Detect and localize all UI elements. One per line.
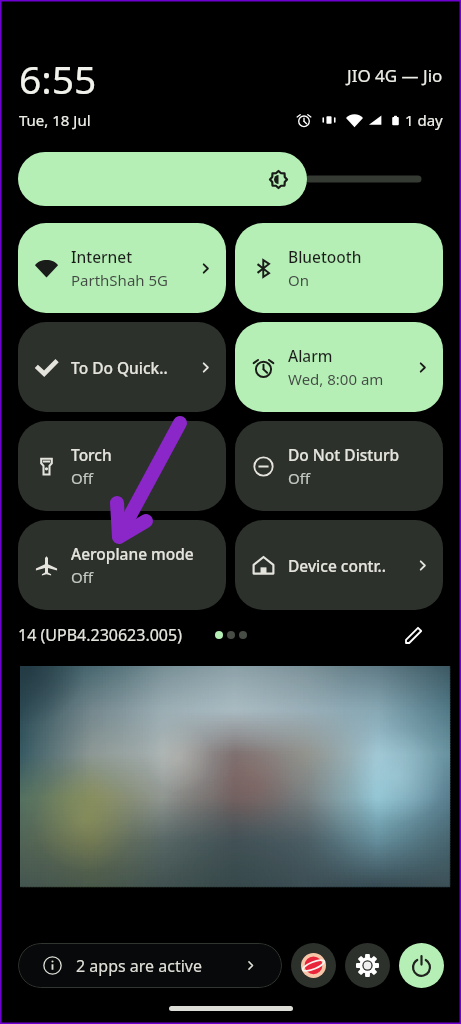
- staticText: Internet: [71, 246, 133, 267]
- staticText: 1 day: [405, 110, 443, 130]
- staticText: 6:55: [19, 52, 97, 105]
- staticText: Torch: [71, 444, 112, 465]
- staticText: To Do Quick..: [71, 357, 168, 378]
- staticText: Off: [71, 567, 94, 587]
- button[interactable]: [20, 666, 449, 886]
- button[interactable]: Brightness: [18, 152, 307, 206]
- staticText: 14 (UPB4.230623.005): [18, 624, 182, 646]
- staticText: Alarm: [288, 345, 333, 366]
- staticText: Aeroplane mode: [71, 543, 194, 564]
- staticText: Device contr..: [288, 555, 387, 576]
- button[interactable]: Bluetooth: [235, 223, 443, 313]
- staticText: Tue, 18 Jul: [19, 110, 91, 130]
- button[interactable]: 2 apps are active: [18, 943, 282, 988]
- button[interactable]: To Do Quick..: [18, 322, 226, 412]
- button[interactable]: Torch: [18, 421, 226, 511]
- button[interactable]: Power: [399, 943, 444, 988]
- staticText: Wed, 8:00 am: [288, 369, 384, 389]
- button[interactable]: Alarm: [235, 322, 443, 412]
- button[interactable]: Settings: [345, 943, 390, 988]
- button[interactable]: Do Not Disturb: [235, 421, 443, 511]
- button[interactable]: Aeroplane mode: [18, 520, 226, 610]
- staticText: Off: [288, 468, 311, 488]
- staticText: Do Not Disturb: [288, 444, 400, 465]
- staticText: Bluetooth: [288, 246, 362, 267]
- staticText: Off: [71, 468, 94, 488]
- staticText: JIO 4G — Jio: [347, 64, 443, 87]
- staticText: On: [288, 270, 309, 290]
- button[interactable]: Device contr..: [235, 520, 443, 610]
- button[interactable]: Internet: [18, 223, 226, 313]
- staticText: ParthShah 5G: [71, 270, 168, 290]
- button[interactable]: User profile: [291, 943, 336, 988]
- staticText: 2 apps are active: [76, 955, 244, 977]
- button[interactable]: Edit tiles: [401, 622, 427, 648]
